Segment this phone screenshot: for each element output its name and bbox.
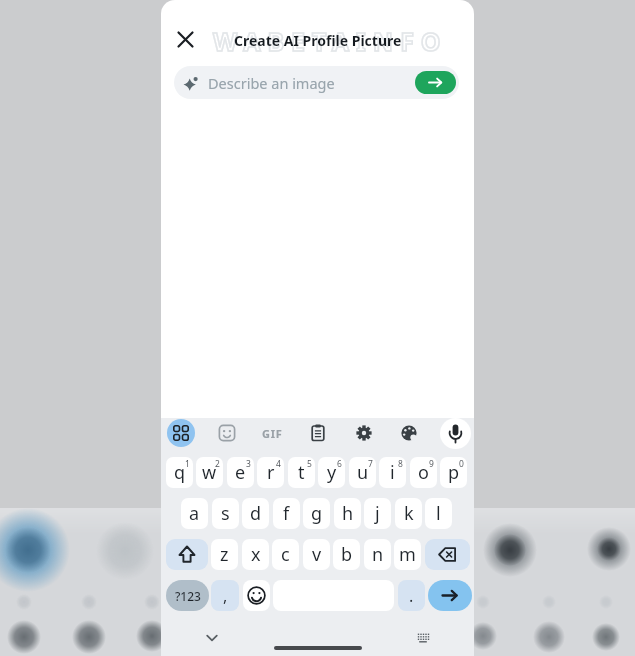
button[interactable]: c	[272, 539, 299, 570]
staticText: 7	[368, 458, 373, 470]
staticText: 8	[398, 458, 403, 470]
button[interactable]: s	[212, 498, 239, 529]
button[interactable]	[413, 630, 433, 646]
button[interactable]: b	[333, 539, 360, 570]
staticText: b	[341, 542, 353, 567]
button[interactable]: y	[318, 457, 345, 488]
button[interactable]	[213, 419, 241, 447]
staticText: g	[311, 501, 323, 526]
staticText: e	[235, 460, 246, 485]
staticText: o	[418, 460, 429, 485]
button[interactable]	[425, 539, 470, 570]
staticText: GIF	[262, 426, 283, 441]
staticText: 3	[246, 458, 251, 470]
button[interactable]	[395, 419, 423, 447]
staticText: ?123	[175, 588, 201, 604]
staticText: j	[375, 501, 380, 526]
staticText: Describe an image	[208, 73, 335, 93]
staticText: x	[251, 542, 261, 567]
button[interactable]: d	[242, 498, 269, 529]
staticText: WABETAINFO	[213, 24, 448, 58]
button[interactable]	[175, 29, 196, 50]
button[interactable]: h	[334, 498, 361, 529]
button[interactable]	[428, 580, 472, 611]
button[interactable]: u	[349, 457, 376, 488]
button[interactable]	[274, 646, 362, 650]
staticText: 0	[459, 458, 464, 470]
button[interactable]: GIF	[258, 419, 286, 447]
button[interactable]	[243, 580, 270, 611]
staticText: 1	[185, 458, 190, 470]
staticText: t	[298, 460, 305, 485]
button[interactable]: j	[364, 498, 391, 529]
staticText: m	[399, 542, 416, 567]
staticText: .	[409, 585, 414, 607]
staticText: a	[189, 501, 200, 526]
staticText: k	[404, 501, 414, 526]
staticText: Create AI Profile Picture	[234, 31, 402, 50]
staticText: r	[267, 460, 275, 485]
button[interactable]: n	[364, 539, 391, 570]
staticText: h	[342, 501, 354, 526]
staticText: w	[202, 460, 217, 485]
button[interactable]	[415, 71, 456, 94]
button[interactable]: Describe an image	[174, 66, 459, 99]
staticText: ,	[223, 585, 228, 607]
button[interactable]: .	[398, 580, 425, 611]
button[interactable]: m	[394, 539, 421, 570]
staticText: n	[372, 542, 384, 567]
button[interactable]: l	[425, 498, 452, 529]
button[interactable]: q	[166, 457, 193, 488]
button[interactable]: g	[303, 498, 330, 529]
button[interactable]: i	[379, 457, 406, 488]
button[interactable]: p	[440, 457, 467, 488]
button[interactable]: ?123	[166, 580, 209, 611]
button[interactable]: x	[242, 539, 269, 570]
button[interactable]: o	[410, 457, 437, 488]
staticText: s	[221, 501, 230, 526]
button[interactable]	[166, 539, 208, 570]
staticText: v	[312, 542, 322, 567]
button[interactable]	[440, 418, 471, 449]
button[interactable]: ,	[211, 580, 239, 611]
staticText: i	[390, 460, 395, 485]
staticText: l	[436, 501, 441, 526]
button[interactable]: w	[196, 457, 223, 488]
button[interactable]	[167, 419, 195, 447]
staticText: d	[250, 501, 262, 526]
button[interactable]	[350, 419, 378, 447]
button[interactable]: f	[273, 498, 300, 529]
staticText: 4	[276, 458, 281, 470]
button[interactable]	[202, 630, 222, 646]
staticText: f	[283, 501, 290, 526]
staticText: y	[327, 460, 337, 485]
button[interactable]: z	[211, 539, 238, 570]
button[interactable]: v	[303, 539, 330, 570]
staticText: z	[220, 542, 229, 567]
staticText: 5	[307, 458, 312, 470]
staticText: 9	[429, 458, 434, 470]
staticText: 6	[337, 458, 342, 470]
button[interactable]: a	[181, 498, 208, 529]
button[interactable]: e	[227, 457, 254, 488]
staticText: q	[174, 460, 186, 485]
button[interactable]: r	[257, 457, 284, 488]
button[interactable]	[304, 419, 332, 447]
staticText: c	[281, 542, 290, 567]
staticText: u	[357, 460, 369, 485]
staticText: 2	[215, 458, 220, 470]
button[interactable]: t	[288, 457, 315, 488]
staticText: p	[448, 460, 460, 485]
button[interactable]: k	[395, 498, 422, 529]
